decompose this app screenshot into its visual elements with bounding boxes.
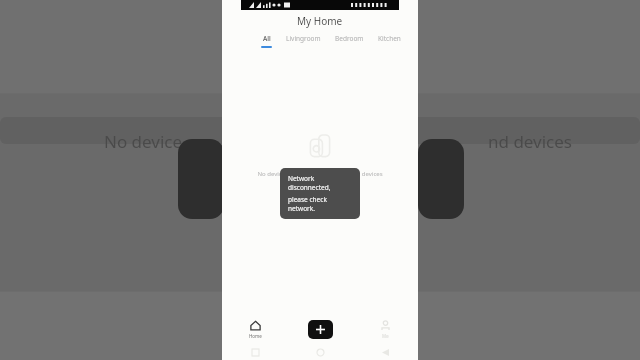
staticText: My Home xyxy=(297,14,343,28)
button[interactable]: Kitchen xyxy=(371,32,408,48)
staticText: please check network. xyxy=(288,195,352,213)
button[interactable]: Bedroom xyxy=(328,32,371,48)
staticText: Bedroom xyxy=(335,34,364,43)
staticText: No device xyxy=(104,130,183,153)
other: Recent apps xyxy=(252,349,259,356)
other: Me xyxy=(380,320,391,331)
button[interactable]: Livingroom xyxy=(279,32,328,48)
button[interactable]: All xyxy=(254,32,279,50)
other: Home xyxy=(250,320,261,331)
staticText: Home xyxy=(249,333,262,339)
button[interactable]: Me xyxy=(353,316,418,343)
staticText: Livingroom xyxy=(286,34,321,43)
button[interactable]: Add device xyxy=(308,320,333,339)
staticText: nd devices xyxy=(488,130,572,153)
staticText: All xyxy=(263,34,271,43)
button[interactable]: Back xyxy=(353,349,418,356)
staticText: Me xyxy=(382,333,389,339)
staticText: Network disconnected, xyxy=(288,174,352,192)
other: Home xyxy=(317,349,324,356)
staticText: Kitchen xyxy=(378,34,401,43)
button[interactable]: Home xyxy=(222,316,288,343)
staticText: No device, click on the button to add de… xyxy=(257,170,383,178)
button[interactable]: Recent apps xyxy=(222,349,288,356)
other: Back xyxy=(382,349,389,356)
button[interactable]: Home xyxy=(288,349,353,356)
